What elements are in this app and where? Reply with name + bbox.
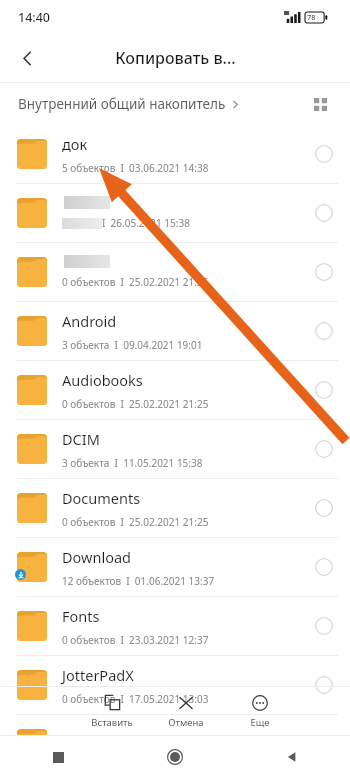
- button[interactable]: Select Fonts: [298, 597, 350, 655]
- staticText: 3 объекта I 09.04.2021 19:01: [62, 338, 203, 352]
- staticText: 0 объектов I 17.05.2021 13:03: [62, 692, 209, 706]
- button[interactable]: Отмена: [160, 693, 212, 729]
- staticText: 0 объектов I 25.02.2021 21:25: [62, 275, 209, 289]
- button[interactable]: Select Android: [298, 302, 350, 360]
- staticText: 78: [307, 12, 316, 22]
- staticText: DCIM: [62, 429, 100, 449]
- button[interactable]: Audiobooks: [0, 361, 350, 419]
- button[interactable]: Select Audiobooks: [298, 361, 350, 419]
- staticText: док: [62, 134, 88, 154]
- staticText: Documents: [62, 488, 141, 508]
- staticText: Fonts: [62, 606, 100, 626]
- staticText: Download: [62, 547, 131, 567]
- button[interactable]: Select док: [298, 125, 350, 183]
- staticText: I 26.05.2021 15:38: [102, 216, 190, 230]
- button[interactable]: I 26.05.2021 15:38: [0, 184, 350, 242]
- staticText: 14:40: [18, 9, 51, 26]
- button[interactable]: Внутренний общий накопитель: [18, 95, 240, 113]
- staticText: JotterPadX: [62, 665, 134, 685]
- staticText: 0 объектов I 25.02.2021 21:25: [62, 397, 209, 411]
- button[interactable]: Еще: [234, 693, 286, 729]
- staticText: 5 объектов I 03.06.2021 14:38: [62, 161, 209, 175]
- staticText: Еще: [250, 716, 270, 729]
- staticText: Копировать в...: [115, 47, 236, 69]
- button[interactable]: Select: [298, 243, 350, 301]
- button[interactable]: Android: [0, 302, 350, 360]
- staticText: Audiobooks: [62, 370, 143, 390]
- button[interactable]: Back: [233, 736, 350, 778]
- staticText: 3 объекта I 11.05.2021 15:38: [62, 456, 203, 470]
- staticText: MIUI: [62, 731, 96, 751]
- button[interactable]: Grid view: [302, 86, 338, 122]
- button[interactable]: Back: [6, 37, 48, 79]
- button[interactable]: 0 объектов I 25.02.2021 21:25: [0, 243, 350, 301]
- staticText: 0 объектов I 25.02.2021 21:25: [62, 515, 209, 529]
- button[interactable]: Recents: [0, 736, 116, 778]
- button[interactable]: Fonts: [0, 597, 350, 655]
- button[interactable]: Вставить: [86, 693, 138, 729]
- staticText: 0 объектов I 23.03.2021 12:37: [62, 633, 209, 647]
- staticText: Внутренний общий накопитель: [18, 95, 226, 113]
- button[interactable]: DCIM: [0, 420, 350, 478]
- staticText: Отмена: [168, 716, 204, 729]
- staticText: Android: [62, 311, 117, 331]
- button[interactable]: Home: [116, 736, 233, 778]
- button[interactable]: Select: [298, 184, 350, 242]
- button[interactable]: Select Download: [298, 538, 350, 596]
- button[interactable]: JotterPadX: [0, 656, 350, 714]
- button[interactable]: Download: [0, 538, 350, 596]
- button[interactable]: Select DCIM: [298, 420, 350, 478]
- button[interactable]: Documents: [0, 479, 350, 537]
- staticText: Вставить: [91, 716, 133, 729]
- button[interactable]: док: [0, 125, 350, 183]
- button[interactable]: Select JotterPadX: [298, 656, 350, 714]
- staticText: 12 объектов I 01.06.2021 13:37: [62, 574, 215, 588]
- button[interactable]: MIUI: [0, 715, 350, 773]
- button[interactable]: Select Documents: [298, 479, 350, 537]
